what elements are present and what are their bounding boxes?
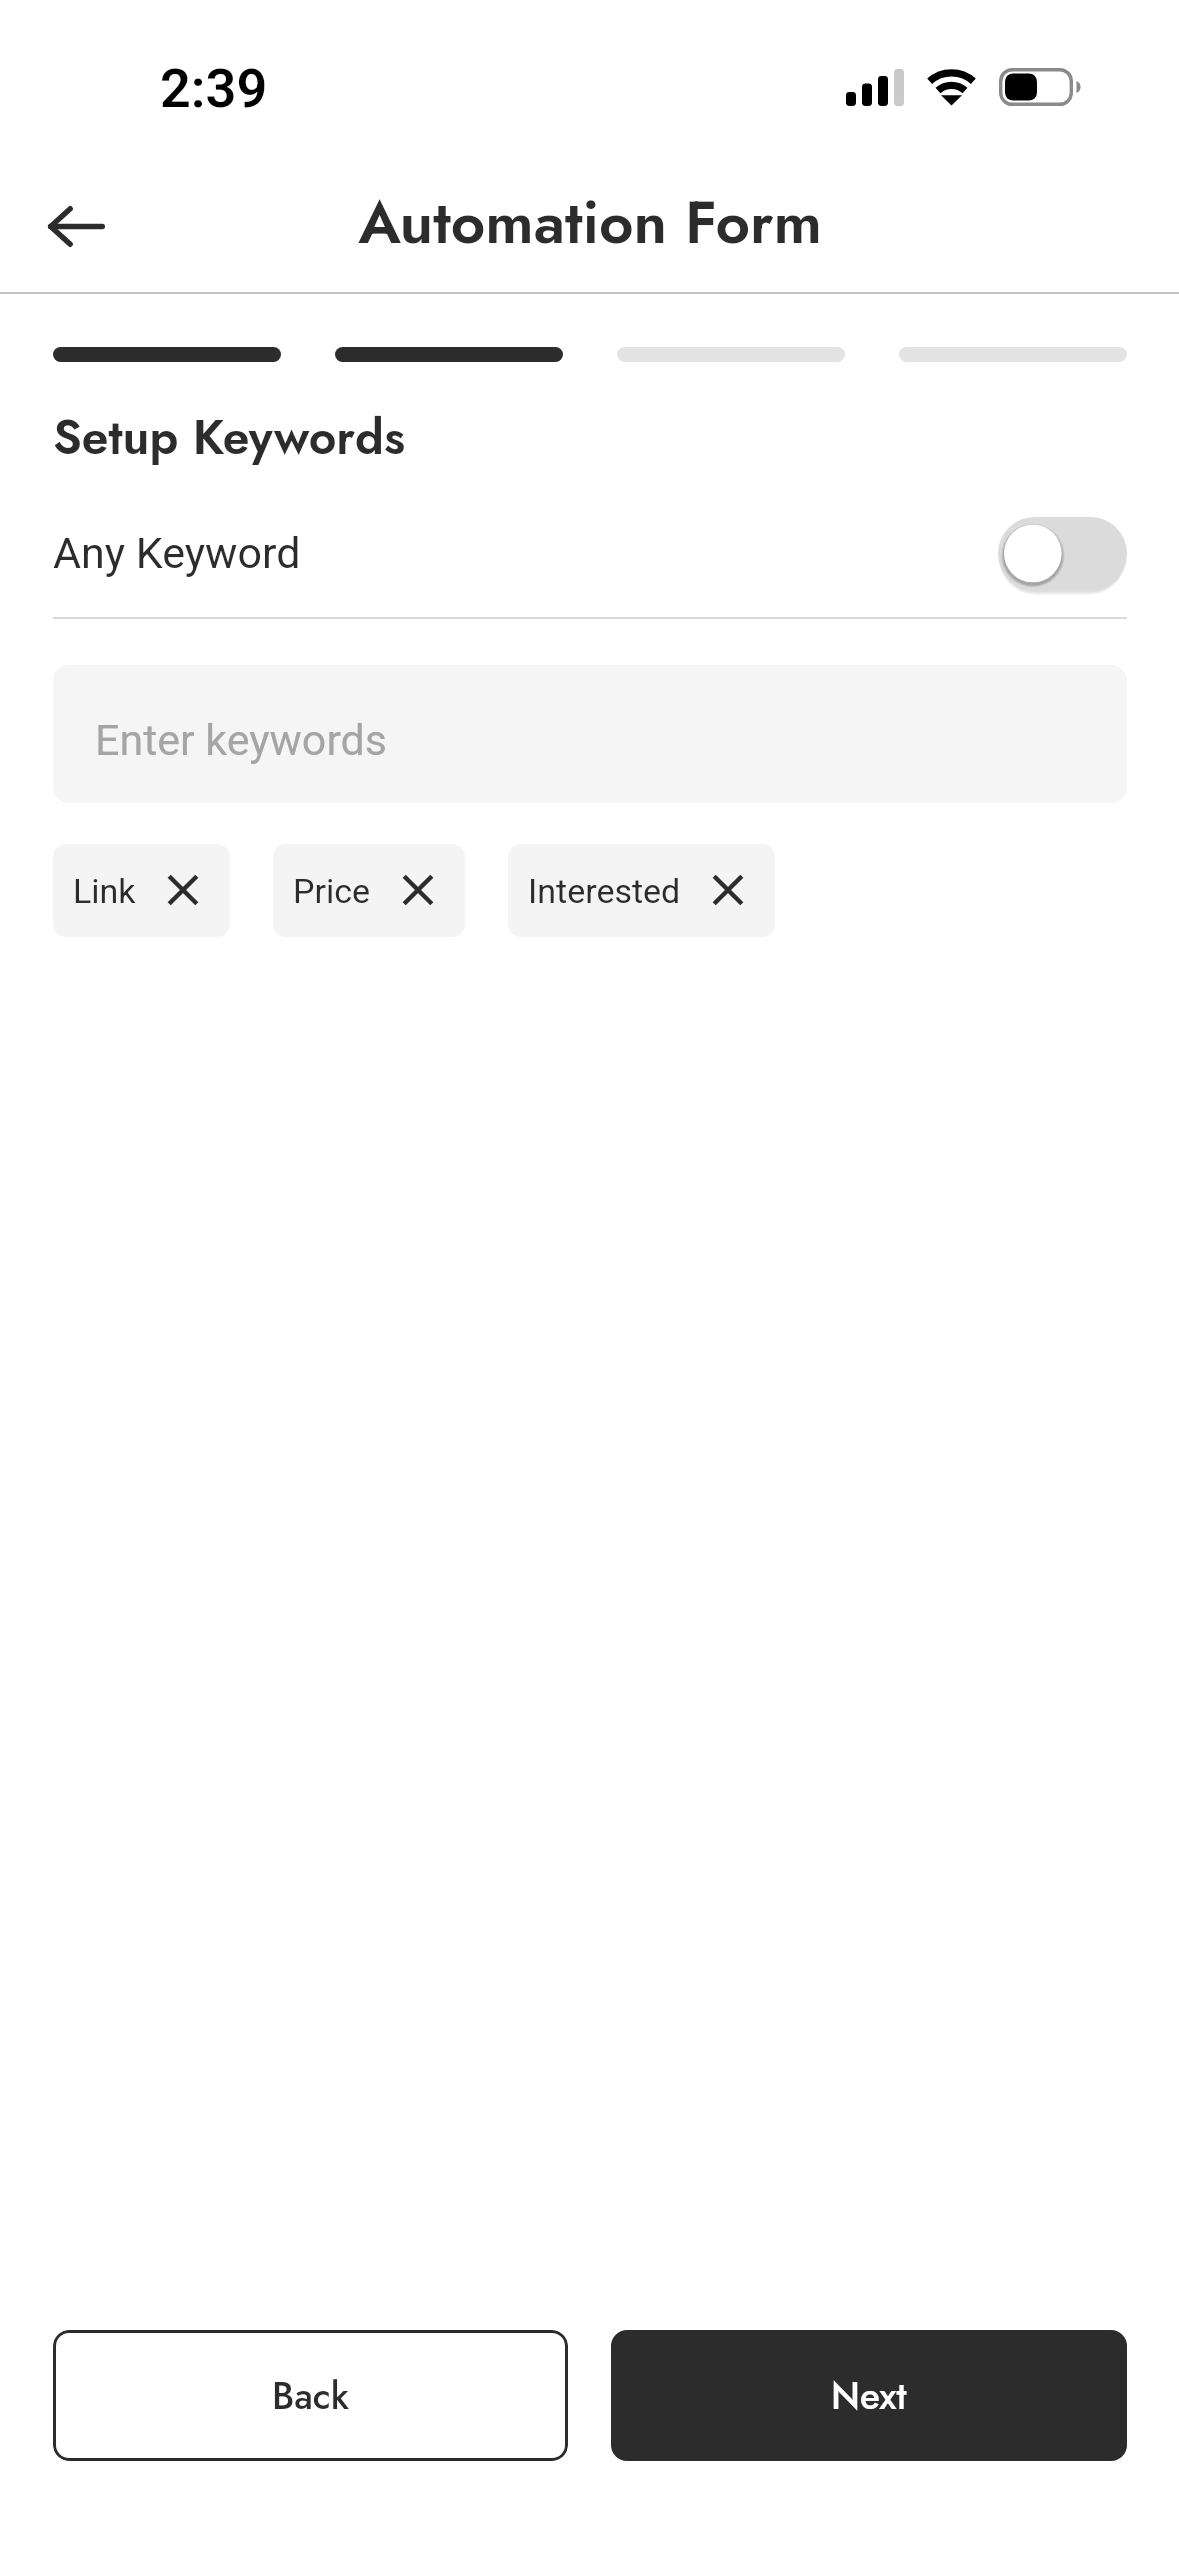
button[interactable]: Price [273, 844, 465, 937]
staticText: Enter keywords [95, 715, 387, 765]
staticText: 2:39 [160, 57, 268, 120]
button[interactable]: Enter keywords [53, 665, 1127, 803]
button[interactable]: Back [53, 2330, 568, 2461]
button[interactable]: Interested [508, 844, 775, 937]
staticText: Back [272, 2369, 350, 2422]
button[interactable]: Any Keyword toggle [998, 517, 1127, 590]
staticText: Automation Form [358, 179, 822, 266]
staticText: Any Keyword [53, 528, 301, 578]
staticText: Price [293, 871, 371, 911]
staticText: Next [831, 2369, 907, 2422]
staticText: Setup Keywords [53, 403, 405, 472]
button[interactable]: Link [53, 844, 230, 937]
staticText: Link [73, 871, 136, 911]
button[interactable]: Next [611, 2330, 1127, 2461]
button[interactable]: Back [24, 174, 128, 278]
staticText: Interested [528, 871, 681, 911]
